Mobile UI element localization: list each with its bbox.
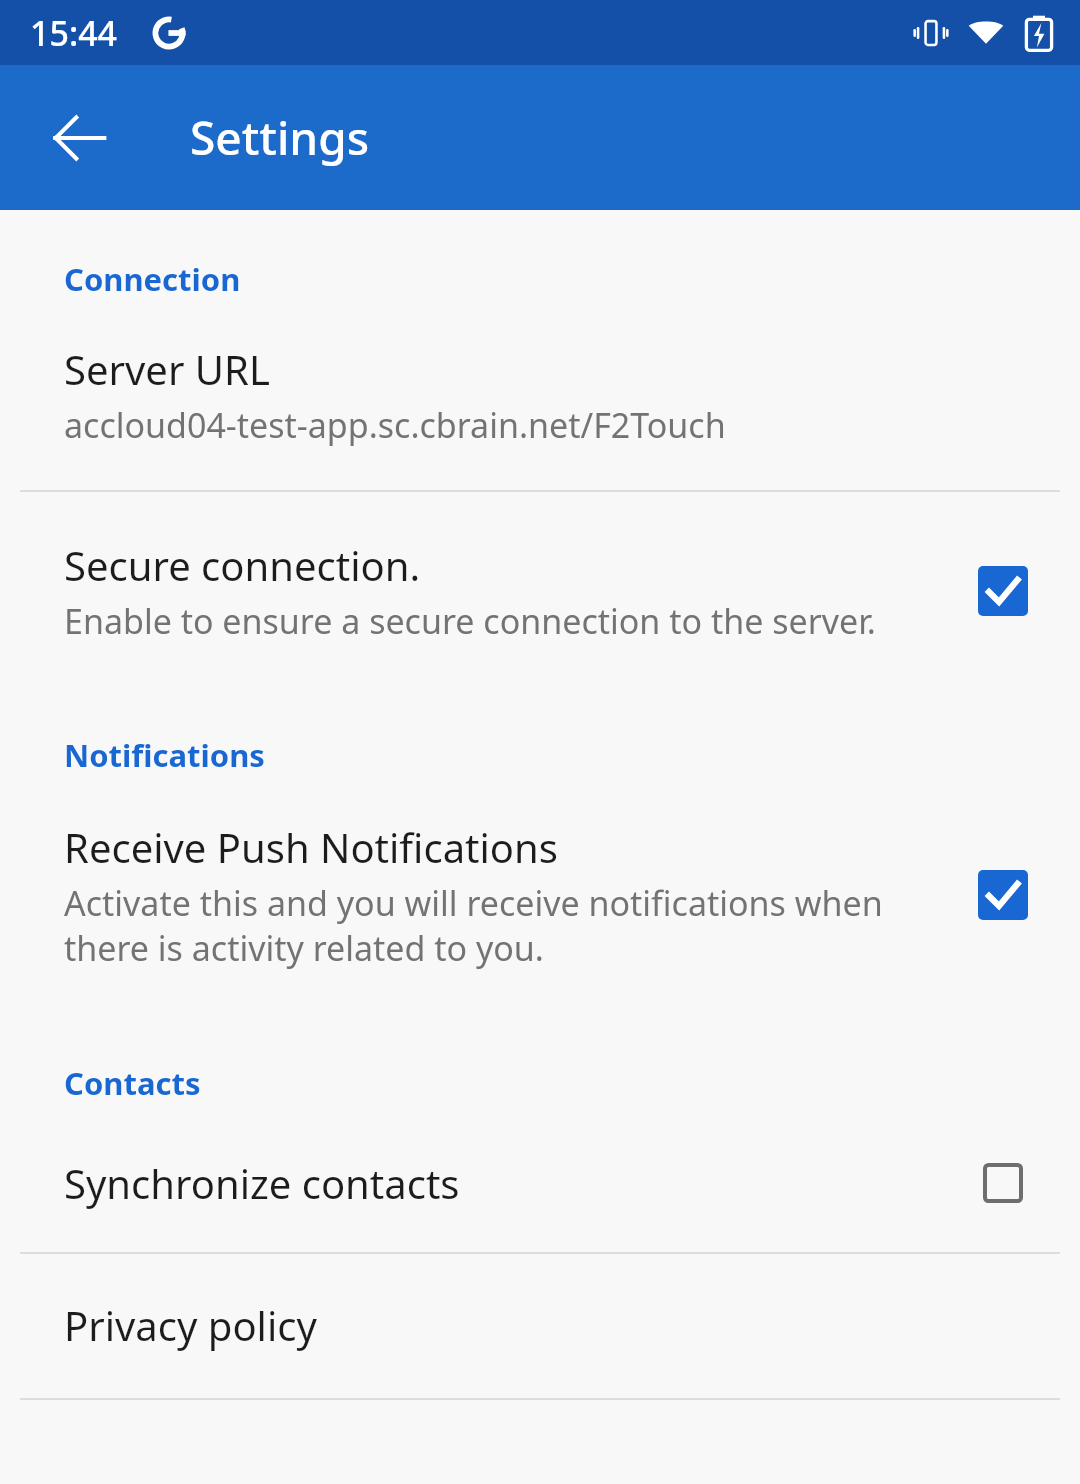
staticText: Notifications xyxy=(64,734,265,776)
button[interactable]: Secure connection. xyxy=(0,538,1080,644)
button[interactable]: Privacy policy xyxy=(0,1298,1080,1352)
staticText: Privacy policy xyxy=(64,1298,317,1352)
staticText: Connection xyxy=(64,258,241,300)
staticText: Server URL xyxy=(64,342,270,396)
button[interactable]: Back xyxy=(26,85,131,190)
staticText: Activate this and you will receive notif… xyxy=(64,880,956,970)
staticText: Enable to ensure a secure connection to … xyxy=(64,598,876,644)
staticText: 15:44 xyxy=(30,10,118,56)
staticText: Receive Push Notifications xyxy=(64,820,558,874)
staticText: Secure connection. xyxy=(64,538,421,592)
button[interactable]: Receive Push Notifications xyxy=(0,820,1080,970)
button[interactable]: Server URL xyxy=(0,342,1080,448)
staticText: accloud04-test-app.sc.cbrain.net/F2Touch xyxy=(64,402,726,448)
staticText: Settings xyxy=(190,106,370,169)
staticText: Synchronize contacts xyxy=(64,1156,978,1210)
button[interactable]: Synchronize contacts xyxy=(0,1156,1080,1210)
staticText: Contacts xyxy=(64,1062,201,1104)
